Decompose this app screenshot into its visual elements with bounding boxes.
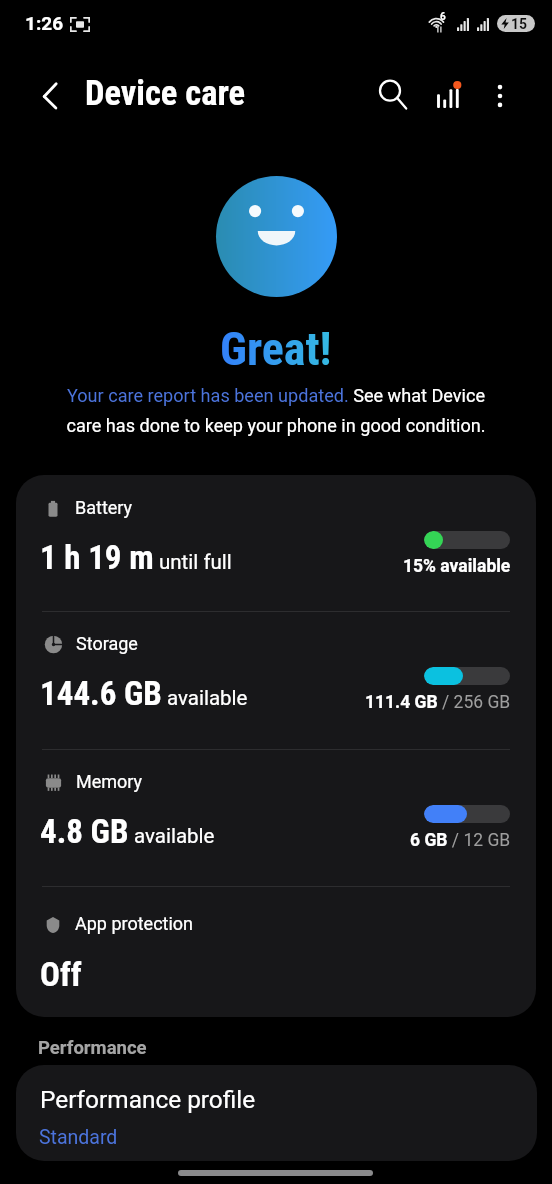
button[interactable]: Storage xyxy=(16,611,536,749)
staticText: Off xyxy=(40,955,82,994)
staticText: Device care xyxy=(85,73,246,113)
staticText: Performance profile xyxy=(40,1085,256,1114)
staticText: Your care report has been updated. See w… xyxy=(52,385,500,437)
button[interactable]: Navigate up xyxy=(27,69,75,117)
staticText: 144.6 GB xyxy=(40,674,162,713)
button[interactable]: Diagnostics xyxy=(424,69,472,117)
staticText: Performance xyxy=(38,1037,147,1059)
staticText: 1:26 xyxy=(25,12,64,34)
button[interactable]: More options xyxy=(476,69,524,117)
staticText: 15 xyxy=(511,16,528,32)
staticText: App protection xyxy=(75,913,194,934)
staticText: 15% available xyxy=(403,556,511,577)
staticText: Memory xyxy=(76,771,143,792)
staticText: available xyxy=(134,824,215,848)
staticText: 4.8 GB xyxy=(40,812,129,851)
staticText: 111.4 GB / 256 GB xyxy=(365,692,511,713)
staticText: 6 GB / 12 GB xyxy=(410,830,511,851)
button[interactable]: Search xyxy=(367,69,415,117)
staticText: Standard xyxy=(39,1126,118,1149)
staticText: until full xyxy=(159,550,232,574)
staticText: available xyxy=(167,686,248,710)
button[interactable]: Memory xyxy=(16,749,536,886)
staticText: 1 h 19 m xyxy=(40,538,154,577)
staticText: Great! xyxy=(220,322,332,376)
staticText: Storage xyxy=(76,633,138,654)
staticText: Battery xyxy=(75,497,133,518)
button[interactable]: Performance profile xyxy=(16,1065,537,1161)
button[interactable]: Battery xyxy=(16,475,536,611)
staticText: 6 xyxy=(440,11,446,23)
